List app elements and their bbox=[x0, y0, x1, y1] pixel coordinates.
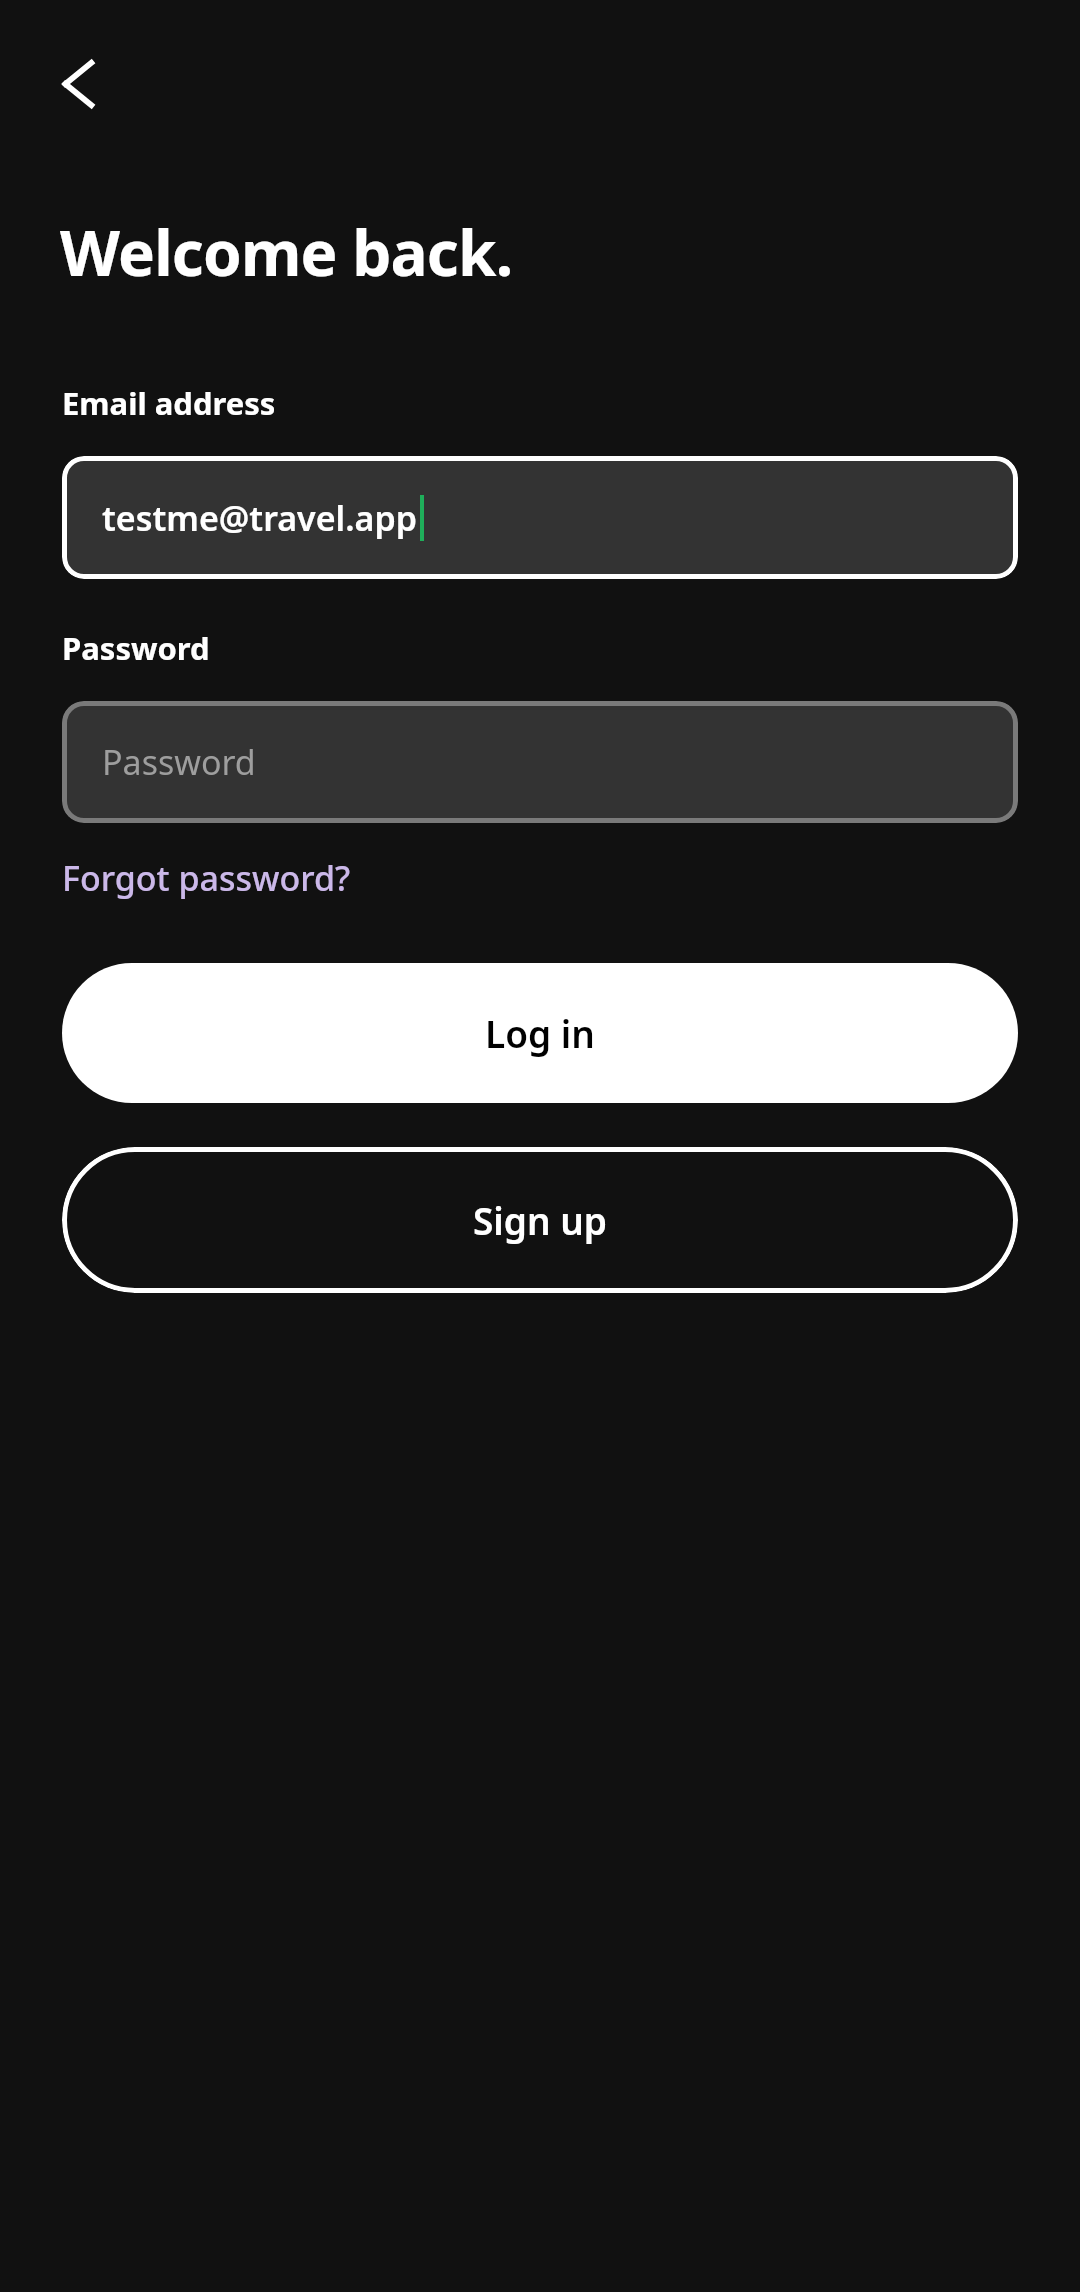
button[interactable]: Log in bbox=[62, 963, 1018, 1103]
button[interactable]: testme@travel.app bbox=[62, 456, 1018, 579]
button[interactable]: Forgot password? bbox=[56, 845, 357, 911]
staticText: Password bbox=[102, 739, 256, 785]
staticText: Welcome back. bbox=[60, 210, 513, 294]
staticText: Password bbox=[62, 627, 210, 669]
staticText: Forgot password? bbox=[62, 855, 351, 901]
staticText: Log in bbox=[485, 1008, 595, 1058]
button[interactable]: Sign up bbox=[62, 1147, 1018, 1293]
button[interactable]: Back bbox=[26, 34, 126, 134]
button[interactable]: Password bbox=[62, 701, 1018, 823]
staticText: Sign up bbox=[473, 1195, 607, 1245]
staticText: Email address bbox=[62, 382, 276, 424]
staticText: testme@travel.app bbox=[102, 495, 418, 541]
